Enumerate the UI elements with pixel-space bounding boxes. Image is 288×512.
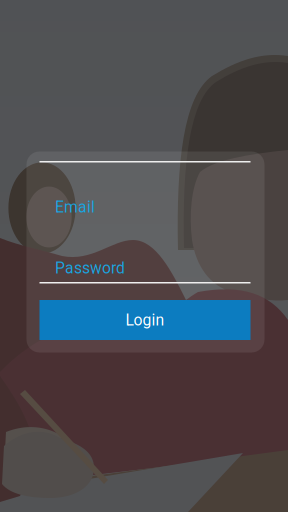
staticText: Login (125, 311, 164, 329)
staticText: Password (55, 259, 125, 277)
staticText: Email (55, 198, 95, 216)
button[interactable]: Login (39, 300, 250, 340)
